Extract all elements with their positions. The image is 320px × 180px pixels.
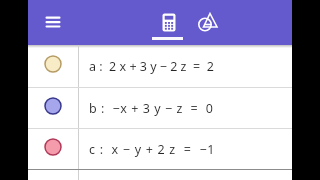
button[interactable] [33, 1, 73, 41]
staticText: b : −x + 3 y − z = 0 [89, 100, 214, 117]
button[interactable]: a : 2 x + 3 y − 2 z = 2 [28, 45, 292, 86]
button[interactable]: b : −x + 3 y − z = 0 [28, 87, 292, 128]
staticText: c : x − y + 2 z = −1 [89, 141, 216, 158]
button[interactable] [187, 0, 223, 45]
staticText: a : 2 x + 3 y − 2 z = 2 [89, 58, 214, 75]
button[interactable]: c : x − y + 2 z = −1 [28, 128, 292, 169]
button[interactable] [151, 0, 187, 45]
